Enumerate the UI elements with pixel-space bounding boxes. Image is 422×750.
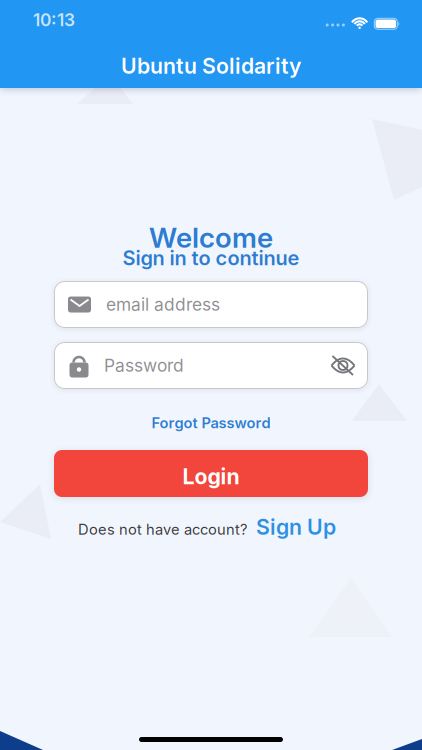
button[interactable]: email address [54, 281, 368, 328]
staticText: Sign Up [256, 514, 336, 540]
button[interactable]: Forgot Password [143, 410, 278, 436]
staticText: Welcome [149, 221, 273, 254]
staticText: Login [182, 464, 239, 489]
button[interactable]: Sign Up [256, 514, 336, 540]
button[interactable]: Show password [330, 354, 356, 376]
staticText: Forgot Password [151, 414, 270, 432]
staticText: Password [104, 355, 184, 376]
button[interactable]: Login [54, 450, 368, 497]
staticText: Sign in to continue [122, 246, 299, 270]
staticText: Ubuntu Solidarity [121, 53, 301, 79]
staticText: Does not have account? [78, 521, 247, 538]
staticText: email address [106, 294, 220, 315]
button[interactable]: Password [54, 342, 368, 389]
staticText: 10:13 [33, 10, 75, 30]
